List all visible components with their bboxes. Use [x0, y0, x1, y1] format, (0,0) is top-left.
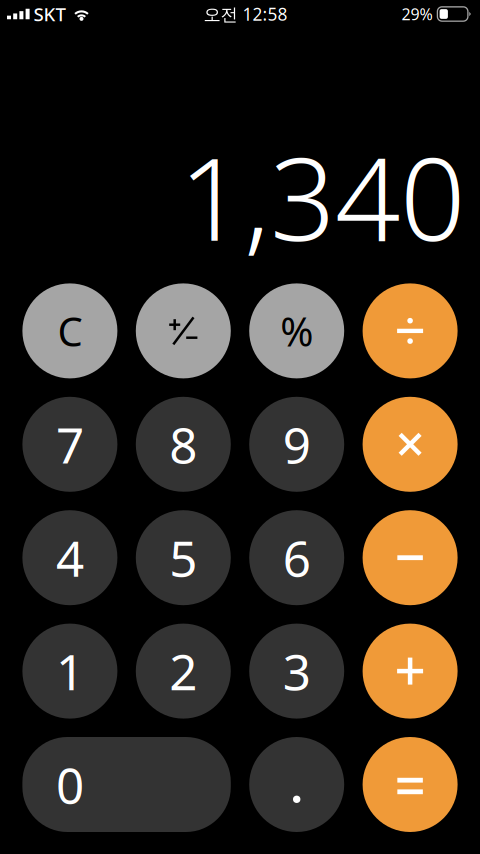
staticText: 오전 12:58	[203, 2, 287, 25]
staticText: SKT	[33, 2, 65, 26]
button[interactable]: Decimal point	[249, 737, 344, 832]
button[interactable]: 0	[22, 737, 231, 832]
staticText: 4	[56, 525, 84, 590]
button[interactable]: Multiply	[363, 397, 458, 492]
button[interactable]: Divide	[363, 283, 458, 378]
staticText: 1,340	[179, 120, 465, 272]
staticText: 2	[169, 638, 197, 704]
staticText: %	[280, 304, 313, 357]
button[interactable]: Add	[363, 624, 458, 719]
button[interactable]: 5	[136, 510, 231, 605]
staticText: 8	[169, 411, 197, 477]
button[interactable]: 3	[249, 624, 344, 719]
staticText: 5	[169, 525, 197, 590]
staticText: 9	[283, 411, 311, 477]
button[interactable]: 2	[136, 624, 231, 719]
button[interactable]: %	[249, 283, 344, 378]
staticText: 1	[56, 638, 84, 704]
staticText: C	[57, 304, 82, 357]
staticText: 6	[283, 525, 311, 590]
button[interactable]: 1	[22, 624, 117, 719]
button[interactable]: 6	[249, 510, 344, 605]
button[interactable]: 9	[249, 397, 344, 492]
staticText: 7	[56, 411, 84, 477]
button[interactable]: 4	[22, 510, 117, 605]
button[interactable]: 7	[22, 397, 117, 492]
staticText: 3	[283, 638, 311, 704]
button[interactable]: Equals	[363, 737, 458, 832]
button[interactable]: C	[22, 283, 117, 378]
button[interactable]: 8	[136, 397, 231, 492]
button[interactable]: Subtract	[363, 510, 458, 605]
button[interactable]: Toggle sign	[136, 283, 231, 378]
staticText: 0	[56, 752, 84, 817]
staticText: 29%	[401, 3, 432, 25]
